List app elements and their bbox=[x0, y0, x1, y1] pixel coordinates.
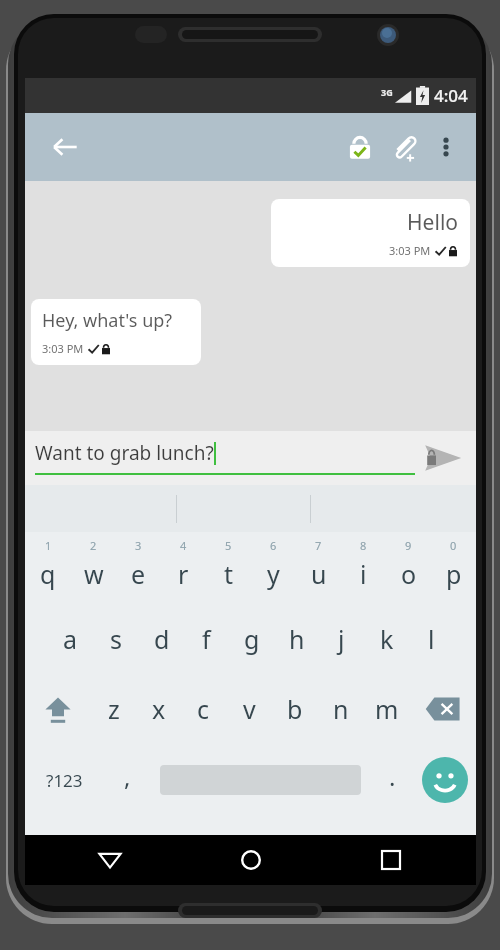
staticText: 4 bbox=[180, 538, 187, 553]
staticText: 5 bbox=[225, 538, 232, 553]
button[interactable]: 6 bbox=[251, 532, 296, 604]
button[interactable]: , bbox=[103, 744, 151, 816]
button[interactable]: Hello bbox=[271, 199, 470, 267]
button[interactable]: b bbox=[272, 674, 318, 744]
button[interactable]: 3 bbox=[116, 532, 161, 604]
staticText: , bbox=[124, 760, 131, 793]
button[interactable]: Back bbox=[45, 127, 85, 167]
button[interactable]: ?123 bbox=[25, 744, 103, 816]
staticText: j bbox=[338, 622, 345, 656]
button[interactable]: 0 bbox=[431, 532, 476, 604]
staticText: 6 bbox=[270, 538, 277, 553]
button[interactable]: z bbox=[91, 674, 136, 744]
button[interactable]: Recent apps bbox=[368, 837, 414, 883]
staticText: s bbox=[110, 622, 122, 656]
button[interactable]: g bbox=[229, 604, 274, 674]
button[interactable]: 5 bbox=[206, 532, 251, 604]
button[interactable]: j bbox=[319, 604, 364, 674]
staticText: z bbox=[108, 692, 120, 726]
button[interactable]: Encrypted bbox=[338, 125, 382, 169]
staticText: 4:04 bbox=[434, 84, 468, 107]
staticText: l bbox=[428, 622, 435, 656]
button[interactable]: Attach bbox=[382, 125, 426, 169]
button[interactable]: Emoji bbox=[414, 744, 476, 816]
button[interactable]: Home bbox=[228, 837, 274, 883]
button[interactable]: x bbox=[136, 674, 181, 744]
staticText: 3G bbox=[381, 86, 393, 98]
button[interactable]: l bbox=[409, 604, 454, 674]
button[interactable]: h bbox=[274, 604, 319, 674]
staticText: Hey, what's up? bbox=[42, 308, 173, 333]
staticText: c bbox=[197, 692, 210, 726]
staticText: 3:03 PM bbox=[389, 243, 431, 258]
button[interactable]: Shift bbox=[25, 674, 91, 744]
button[interactable]: d bbox=[139, 604, 184, 674]
button[interactable]: k bbox=[364, 604, 409, 674]
staticText: p bbox=[446, 557, 462, 591]
staticText: x bbox=[152, 692, 166, 726]
staticText: q bbox=[40, 557, 56, 591]
staticText: 9 bbox=[405, 538, 412, 553]
button[interactable]: a bbox=[47, 604, 93, 674]
button[interactable]: 4 bbox=[161, 532, 206, 604]
staticText: i bbox=[360, 557, 367, 591]
staticText: 0 bbox=[450, 538, 457, 553]
staticText: ?123 bbox=[46, 769, 83, 792]
button[interactable]: m bbox=[364, 674, 410, 744]
button[interactable]: c bbox=[181, 674, 226, 744]
staticText: v bbox=[243, 692, 256, 726]
staticText: t bbox=[224, 557, 234, 591]
staticText: g bbox=[244, 622, 260, 656]
staticText: k bbox=[380, 622, 394, 656]
staticText: b bbox=[287, 692, 303, 726]
button[interactable]: f bbox=[184, 604, 229, 674]
staticText: Want to grab lunch? bbox=[35, 440, 214, 466]
staticText: h bbox=[289, 622, 305, 656]
staticText: f bbox=[202, 622, 211, 656]
staticText: 7 bbox=[315, 538, 322, 553]
staticText: . bbox=[389, 760, 396, 793]
button[interactable]: 1 bbox=[25, 532, 71, 604]
staticText: u bbox=[311, 557, 327, 591]
button[interactable] bbox=[151, 744, 370, 816]
staticText: a bbox=[63, 622, 78, 656]
button[interactable]: n bbox=[318, 674, 364, 744]
button[interactable]: 8 bbox=[341, 532, 386, 604]
button[interactable]: s bbox=[93, 604, 139, 674]
button[interactable]: Hey, what's up? bbox=[31, 299, 201, 365]
staticText: e bbox=[131, 557, 146, 591]
button[interactable]: More options bbox=[426, 127, 466, 167]
button[interactable]: Backspace bbox=[410, 674, 476, 744]
staticText: d bbox=[154, 622, 170, 656]
button[interactable]: Back bbox=[87, 837, 133, 883]
staticText: 2 bbox=[90, 538, 97, 553]
staticText: r bbox=[178, 557, 189, 591]
staticText: w bbox=[84, 557, 104, 591]
staticText: Hello bbox=[407, 208, 458, 237]
staticText: 1 bbox=[45, 538, 52, 553]
staticText: 3:03 PM bbox=[42, 341, 84, 356]
button[interactable]: 7 bbox=[296, 532, 341, 604]
button[interactable]: 2 bbox=[71, 532, 116, 604]
staticText: n bbox=[333, 692, 349, 726]
staticText: o bbox=[401, 557, 417, 591]
button[interactable]: Want to grab lunch? bbox=[35, 437, 420, 479]
button[interactable]: Send encrypted bbox=[416, 432, 468, 484]
staticText: m bbox=[375, 692, 399, 726]
staticText: 3 bbox=[135, 538, 142, 553]
staticText: 8 bbox=[360, 538, 367, 553]
button[interactable]: v bbox=[226, 674, 272, 744]
staticText: y bbox=[267, 557, 280, 591]
button[interactable]: . bbox=[370, 744, 414, 816]
button[interactable]: 9 bbox=[386, 532, 431, 604]
